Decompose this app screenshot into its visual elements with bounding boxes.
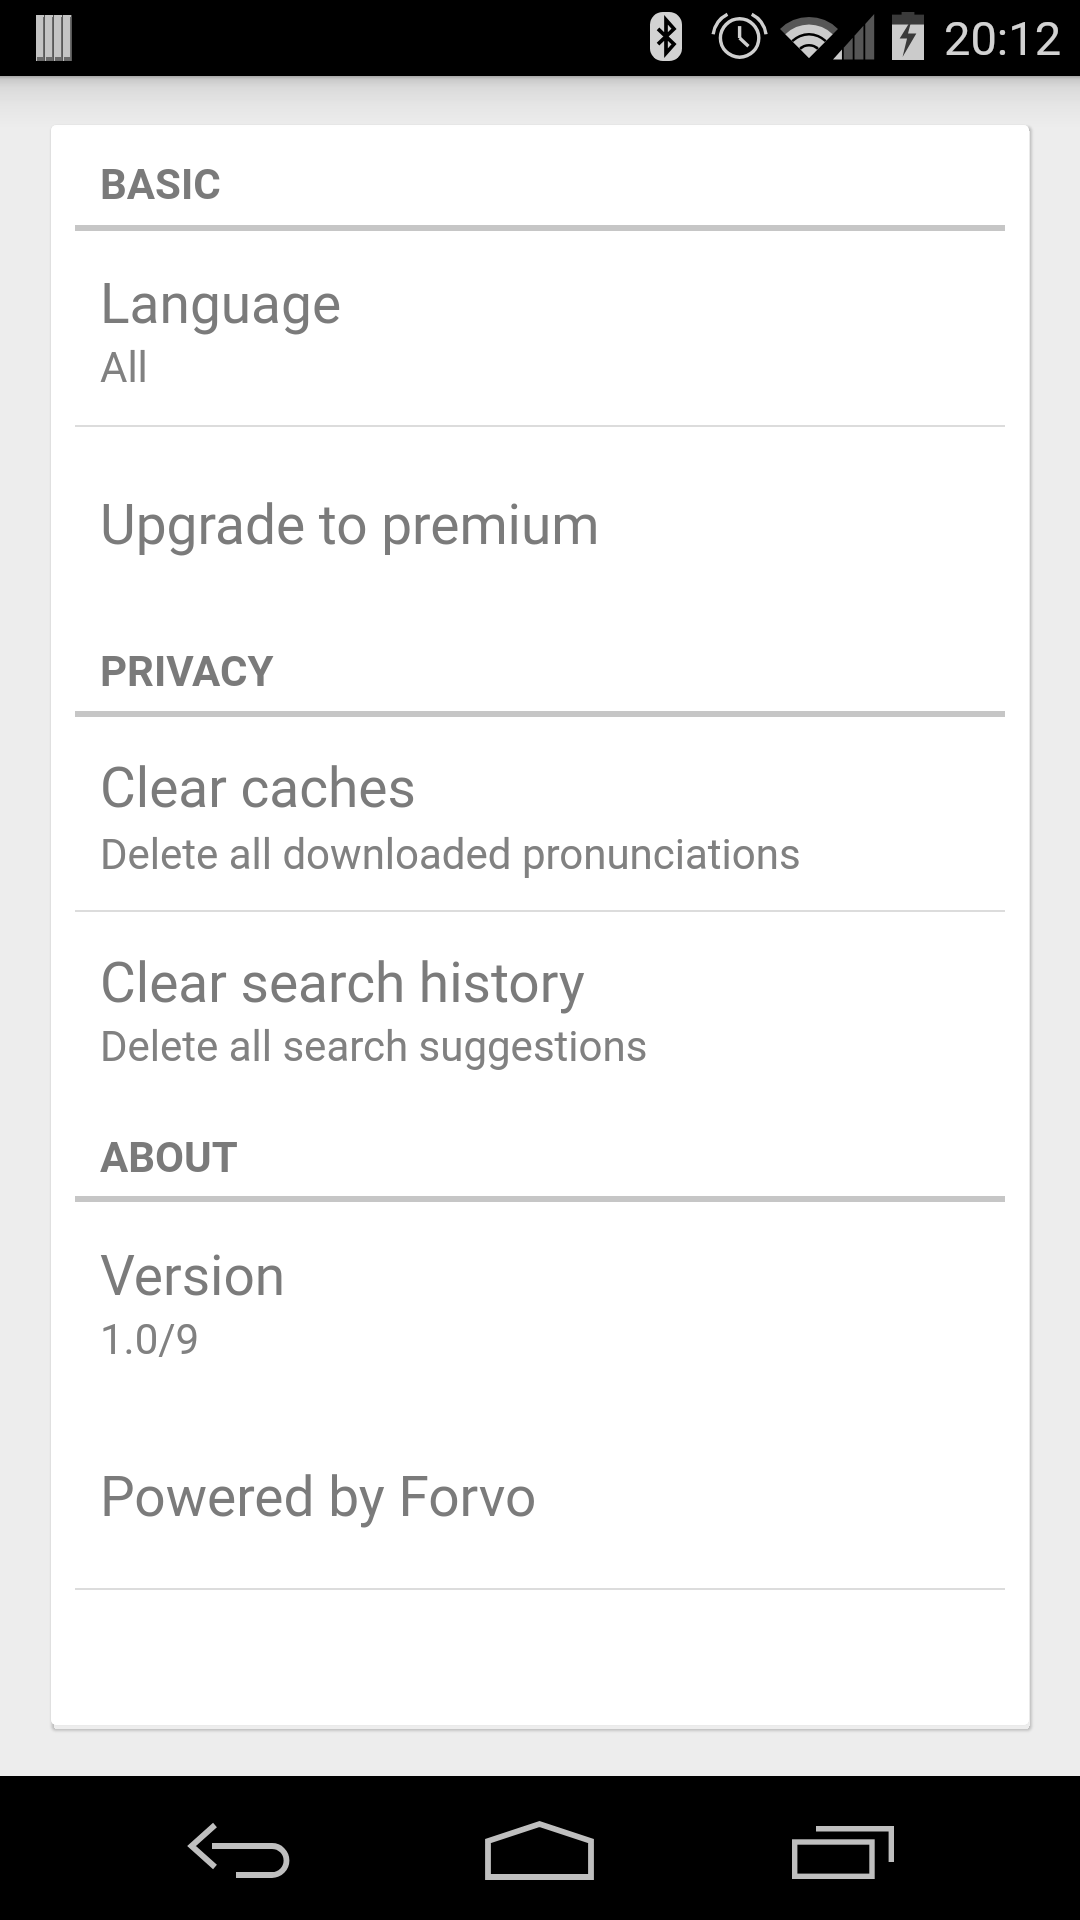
button[interactable]: Home [485, 1821, 594, 1880]
staticText: Delete all downloaded pronunciations [100, 830, 801, 879]
button[interactable]: Clear search history [51, 912, 1029, 1133]
staticText: Upgrade to premium [100, 493, 600, 557]
button[interactable]: Clear caches [51, 717, 1029, 910]
button[interactable]: Language [51, 231, 1029, 425]
staticText: Version [100, 1244, 286, 1308]
staticText: ABOUT [100, 1133, 238, 1182]
staticText: All [100, 343, 148, 392]
button[interactable]: Version [51, 1202, 1029, 1465]
button[interactable]: Upgrade to premium [51, 427, 1029, 647]
staticText: 1.0/9 [100, 1315, 200, 1364]
staticText: Language [100, 272, 342, 336]
button[interactable]: Powered by Forvo [51, 1465, 1029, 1588]
staticText: Clear caches [100, 756, 416, 820]
staticText: Powered by Forvo [100, 1465, 537, 1529]
staticText: Delete all search suggestions [100, 1022, 648, 1071]
button[interactable]: Back [190, 1827, 290, 1884]
staticText: BASIC [100, 160, 221, 209]
button[interactable]: Recent apps [792, 1826, 894, 1879]
staticText: PRIVACY [100, 647, 274, 696]
staticText: 20:12 [944, 11, 1062, 66]
staticText: Clear search history [100, 951, 585, 1015]
